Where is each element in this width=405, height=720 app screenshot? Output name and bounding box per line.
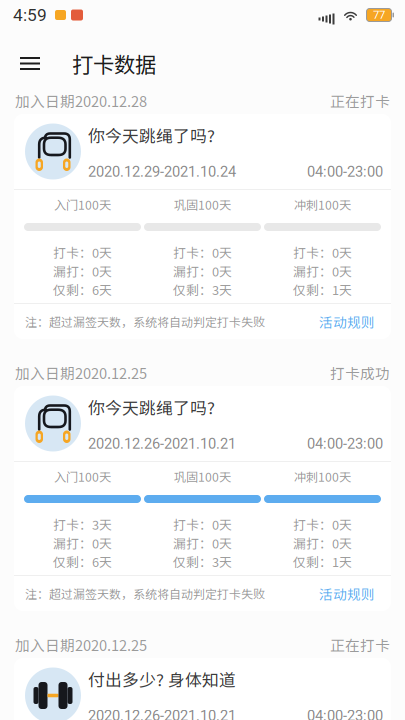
staticText: 活动规则 (319, 584, 375, 603)
button[interactable]: 活动规则 (319, 584, 375, 603)
staticText: 2020.12.26-2021.10.21 (88, 707, 236, 720)
staticText: 入门100天 (54, 196, 111, 213)
staticText: 仅剩：1天 (293, 552, 352, 571)
staticText: 活动规则 (319, 312, 375, 331)
staticText: 漏打：0天 (53, 261, 112, 280)
staticText: 仅剩：1天 (293, 280, 352, 299)
staticText: 你今天跳绳了吗? (88, 395, 215, 419)
staticText: 漏打：0天 (173, 261, 232, 280)
staticText: 加入日期2020.12.25 (15, 362, 147, 383)
button[interactable]: Menu (8, 41, 52, 85)
staticText: 打卡数据 (72, 48, 156, 79)
staticText: 漏打：0天 (293, 533, 352, 552)
staticText: 正在打卡 (330, 90, 390, 111)
staticText: 漏打：0天 (293, 261, 352, 280)
staticText: 4:59 (13, 5, 47, 25)
staticText: 打卡：0天 (293, 243, 352, 261)
staticText: 冲刺100天 (294, 196, 351, 213)
staticText: 04:00-23:00 (307, 707, 383, 720)
staticText: 巩固100天 (174, 468, 231, 485)
staticText: 打卡：0天 (173, 515, 232, 533)
staticText: 加入日期2020.12.25 (15, 634, 147, 655)
staticText: 巩固100天 (174, 196, 231, 213)
staticText: 04:00-23:00 (307, 435, 383, 452)
staticText: 77 (373, 8, 385, 22)
staticText: 打卡：0天 (293, 515, 352, 533)
staticText: 付出多少? 身体知道 (88, 667, 236, 691)
staticText: 仅剩：6天 (53, 552, 112, 571)
staticText: 漏打：0天 (173, 533, 232, 552)
staticText: 打卡：0天 (53, 243, 112, 261)
staticText: 注：超过漏签天数，系统将自动判定打卡失败 (25, 313, 265, 330)
staticText: 冲刺100天 (294, 468, 351, 485)
staticText: 仅剩：3天 (173, 280, 232, 299)
staticText: 仅剩：6天 (53, 280, 112, 299)
staticText: 2020.12.29-2021.10.24 (88, 163, 236, 180)
staticText: 正在打卡 (330, 634, 390, 655)
button[interactable]: 活动规则 (319, 312, 375, 331)
staticText: 注：超过漏签天数，系统将自动判定打卡失败 (25, 585, 265, 602)
staticText: 2020.12.26-2021.10.21 (88, 435, 236, 452)
staticText: 入门100天 (54, 468, 111, 485)
staticText: 04:00-23:00 (307, 163, 383, 180)
staticText: 打卡：3天 (53, 515, 112, 533)
staticText: 打卡：0天 (173, 243, 232, 261)
staticText: 漏打：0天 (53, 533, 112, 552)
staticText: 仅剩：3天 (173, 552, 232, 571)
staticText: 打卡成功 (330, 362, 390, 383)
staticText: 加入日期2020.12.28 (15, 90, 147, 111)
staticText: 你今天跳绳了吗? (88, 123, 215, 147)
